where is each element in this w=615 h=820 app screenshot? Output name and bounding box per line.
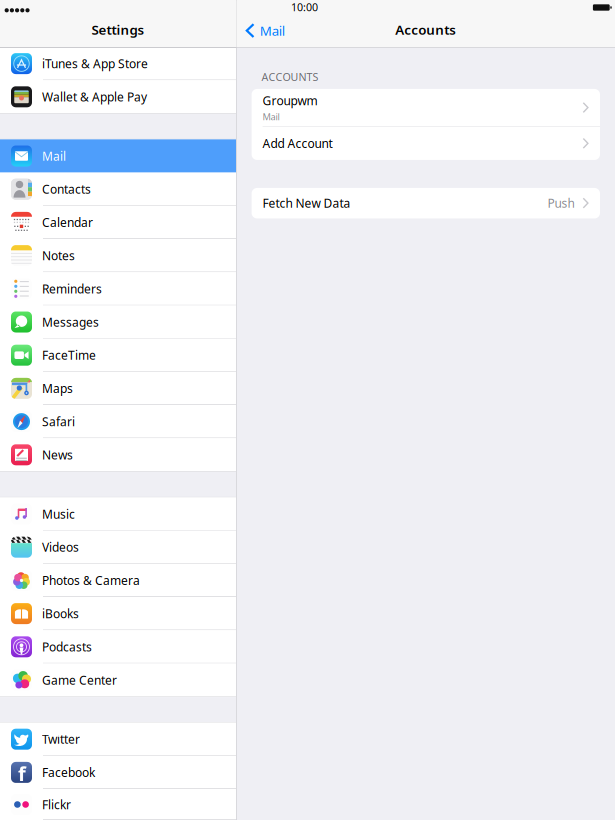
staticText: Game Center	[42, 672, 117, 688]
button[interactable]: Podcasts	[0, 630, 236, 663]
staticText: Notes	[42, 248, 75, 263]
button[interactable]: iTunes & App Store	[0, 47, 236, 80]
button[interactable]: Game Center	[0, 663, 236, 697]
staticText: Mail	[260, 22, 285, 39]
staticText: Facebook	[42, 764, 95, 780]
staticText: Twitter	[42, 731, 80, 747]
staticText: FaceTime	[42, 347, 96, 363]
staticText: Push	[547, 195, 574, 211]
staticText: Videos	[42, 539, 79, 555]
staticText: Fetch New Data	[263, 195, 351, 211]
button[interactable]: Flickr	[0, 789, 236, 820]
staticText: Podcasts	[42, 639, 92, 655]
staticText: Mail	[42, 148, 66, 164]
button[interactable]: Safari	[0, 405, 236, 438]
staticText: Music	[42, 506, 75, 522]
button[interactable]: Contacts	[0, 173, 236, 206]
staticText: Flickr	[42, 796, 71, 812]
button[interactable]: Reminders	[0, 272, 236, 305]
staticText: Contacts	[42, 181, 91, 197]
button[interactable]: FaceTime	[0, 339, 236, 372]
staticText: News	[42, 447, 73, 463]
button[interactable]: Calendar	[0, 206, 236, 239]
button[interactable]: Photos & Camera	[0, 564, 236, 597]
button[interactable]: Videos	[0, 531, 236, 564]
staticText: Reminders	[42, 281, 102, 297]
button[interactable]: Mail	[0, 139, 236, 173]
staticText: f	[18, 760, 26, 787]
button[interactable]: Wallet & Apple Pay	[0, 80, 236, 113]
staticText: Settings	[91, 21, 144, 38]
staticText: Messages	[42, 314, 99, 330]
button[interactable]: Maps	[0, 372, 236, 405]
button[interactable]: f	[0, 756, 236, 789]
button[interactable]: Fetch New Data	[252, 188, 600, 218]
staticText: Add Account	[263, 135, 333, 151]
button[interactable]: Music	[0, 497, 236, 531]
button[interactable]: Add Account	[252, 127, 600, 160]
staticText: Accounts	[395, 21, 456, 38]
staticText: ACCOUNTS	[262, 70, 319, 84]
staticText: Mail	[263, 110, 280, 123]
button[interactable]: Twitter	[0, 723, 236, 756]
button[interactable]: News	[0, 438, 236, 471]
staticText: Maps	[42, 380, 73, 396]
button[interactable]: Mail	[237, 17, 291, 44]
button[interactable]: Notes	[0, 239, 236, 272]
staticText: Photos & Camera	[42, 572, 140, 588]
button[interactable]: iBooks	[0, 597, 236, 630]
staticText: 10:00	[291, 0, 318, 14]
staticText: Wallet & Apple Pay	[42, 89, 147, 105]
button[interactable]: Groupwm	[252, 89, 600, 126]
staticText: iTunes & App Store	[42, 56, 148, 71]
staticText: Groupwm	[263, 93, 318, 108]
staticText: iBooks	[42, 606, 79, 621]
button[interactable]: Messages	[0, 305, 236, 339]
staticText: Safari	[42, 414, 75, 429]
staticText: Calendar	[42, 214, 93, 230]
